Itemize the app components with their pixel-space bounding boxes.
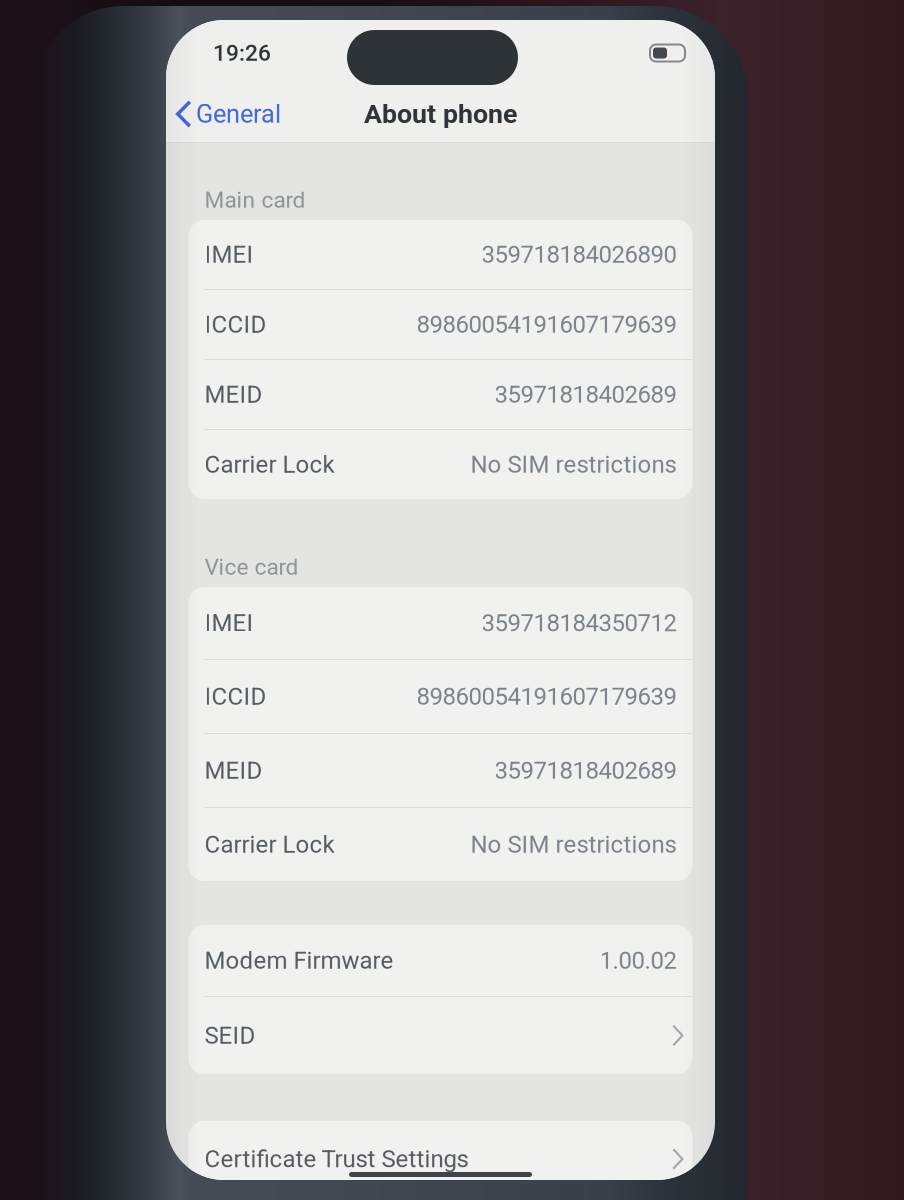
button[interactable]: SEID: [188, 997, 692, 1074]
button[interactable]: Carrier Lock: [188, 808, 692, 881]
button[interactable]: General: [166, 90, 281, 138]
staticText: Carrier Lock: [204, 450, 334, 478]
staticText: MEID: [204, 380, 262, 408]
staticText: 89860054191607179639: [416, 682, 676, 710]
staticText: No SIM restrictions: [470, 830, 676, 858]
staticText: IMEI: [204, 609, 253, 637]
staticText: Carrier Lock: [204, 830, 334, 858]
button[interactable]: ICCID: [188, 290, 692, 359]
staticText: 35971818402689: [494, 380, 676, 408]
button[interactable]: Certificate Trust Settings: [188, 1121, 692, 1197]
staticText: MEID: [204, 756, 262, 784]
staticText: 1.00.02: [599, 946, 676, 974]
staticText: 359718184350712: [481, 609, 676, 637]
button[interactable]: Modem Firmware: [188, 925, 692, 996]
staticText: 19:26: [213, 40, 271, 66]
staticText: IMEI: [204, 240, 253, 268]
staticText: Main card: [204, 187, 305, 213]
staticText: 359718184026890: [481, 240, 676, 268]
button[interactable]: Carrier Lock: [188, 430, 692, 499]
staticText: About phone: [364, 98, 517, 130]
staticText: ICCID: [204, 310, 266, 338]
button[interactable]: MEID: [188, 734, 692, 807]
staticText: SEID: [204, 1021, 255, 1049]
button[interactable]: ICCID: [188, 660, 692, 733]
button[interactable]: MEID: [188, 360, 692, 429]
staticText: Modem Firmware: [204, 946, 393, 974]
staticText: General: [196, 99, 281, 129]
button[interactable]: IMEI: [188, 220, 692, 289]
staticText: Vice card: [204, 554, 298, 580]
staticText: ICCID: [204, 682, 266, 710]
staticText: 89860054191607179639: [416, 310, 676, 338]
staticText: No SIM restrictions: [470, 450, 676, 478]
staticText: Certificate Trust Settings: [204, 1145, 468, 1173]
staticText: 35971818402689: [494, 756, 676, 784]
button[interactable]: IMEI: [188, 587, 692, 659]
